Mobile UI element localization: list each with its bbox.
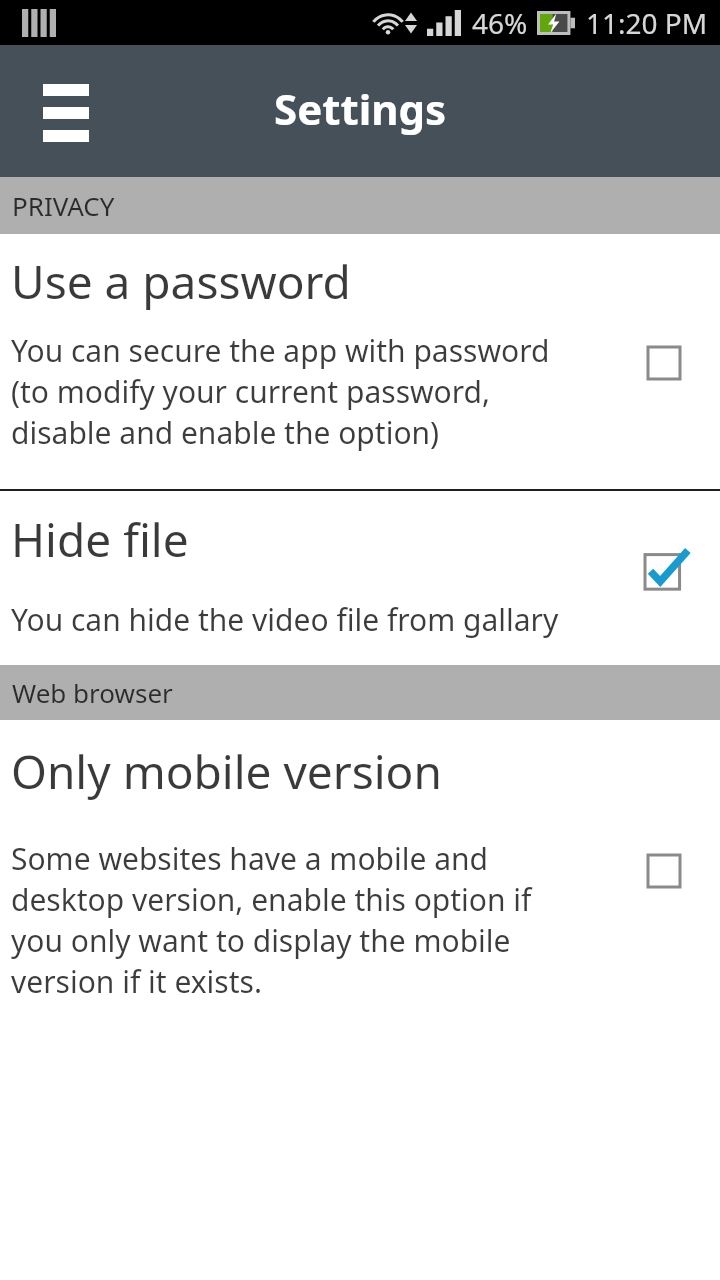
staticText: 11:20 PM <box>586 4 708 42</box>
button[interactable]: Menu <box>28 71 104 151</box>
staticText: Only mobile version <box>11 740 442 803</box>
button[interactable]: Hide file <box>0 491 720 665</box>
staticText: Use a password <box>11 250 351 313</box>
staticText: version if it exists. <box>11 961 262 1002</box>
staticText: Some websites have a mobile and <box>11 838 488 879</box>
staticText: disable and enable the option) <box>11 412 440 453</box>
staticText: (to modify your current password, <box>11 371 491 412</box>
staticText: desktop version, enable this option if <box>11 879 532 920</box>
button[interactable]: Toggle setting <box>646 345 682 381</box>
staticText: Web browser <box>12 675 173 710</box>
staticText: You can hide the video file from gallary <box>11 599 559 640</box>
staticText: Hide file <box>11 508 189 571</box>
staticText: Settings <box>274 80 447 137</box>
button[interactable]: Toggle setting, checked <box>642 545 690 593</box>
staticText: You can secure the app with password <box>11 330 550 371</box>
button[interactable]: Only mobile version <box>0 720 720 1040</box>
button[interactable]: Use a password <box>0 234 720 489</box>
staticText: PRIVACY <box>12 188 115 223</box>
staticText: you only want to display the mobile <box>11 920 511 961</box>
staticText: 46% <box>472 4 528 42</box>
button[interactable]: Toggle setting <box>646 853 682 889</box>
